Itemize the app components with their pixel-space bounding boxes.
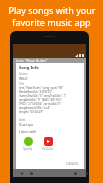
staticText: Artist bbox=[19, 118, 26, 122]
staticText: favorite music app bbox=[12, 16, 91, 28]
staticText: tent "New Rules" bbox=[16, 58, 48, 63]
other: Back bbox=[20, 172, 23, 175]
button[interactable]: Spotify bbox=[19, 137, 37, 151]
staticText: tent "New Rules" song_spot="M" MediaBase… bbox=[19, 86, 74, 114]
button[interactable]: YouTube bbox=[39, 137, 57, 151]
other: Home bbox=[30, 172, 33, 175]
staticText: WILD bbox=[19, 76, 28, 81]
staticText: Station bbox=[19, 72, 28, 76]
staticText: Play songs with your bbox=[8, 4, 96, 16]
other: Assistant bbox=[74, 172, 77, 175]
button[interactable]: CANCEL bbox=[66, 161, 80, 166]
staticText: Spotify bbox=[23, 147, 33, 151]
staticText: Dua Lipa bbox=[19, 122, 33, 127]
other: Recents bbox=[85, 172, 88, 175]
staticText: Title bbox=[19, 82, 25, 86]
staticText: Song Info bbox=[19, 65, 39, 71]
staticText: YouTube bbox=[42, 147, 54, 151]
staticText: Listen with bbox=[19, 129, 37, 134]
